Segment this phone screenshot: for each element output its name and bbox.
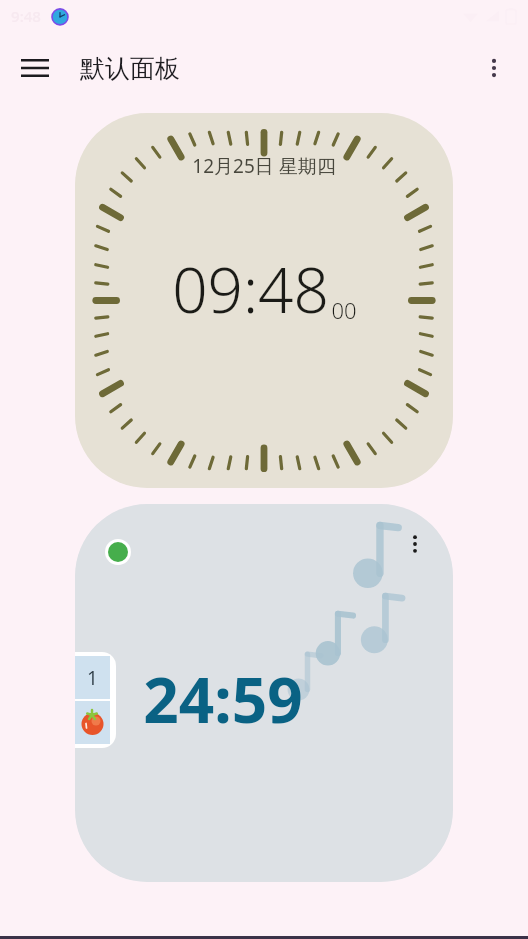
button[interactable]: Timer options [75, 504, 453, 882]
staticText: 1 [87, 665, 98, 691]
staticText: 9:48 [11, 6, 41, 26]
staticText: 00 [331, 295, 357, 325]
staticText: 12月25日 星期四 [192, 153, 336, 179]
button[interactable]: 1 [75, 656, 110, 744]
button[interactable]: More options [470, 44, 518, 92]
button[interactable]: Timer options [395, 524, 435, 564]
staticText: 24:59 [143, 657, 303, 741]
button[interactable]: Open navigation menu [11, 44, 59, 92]
button[interactable]: 12月25日 星期四 [75, 113, 453, 488]
staticText: 09:48 [172, 247, 329, 331]
staticText: 默认面板 [80, 53, 180, 84]
